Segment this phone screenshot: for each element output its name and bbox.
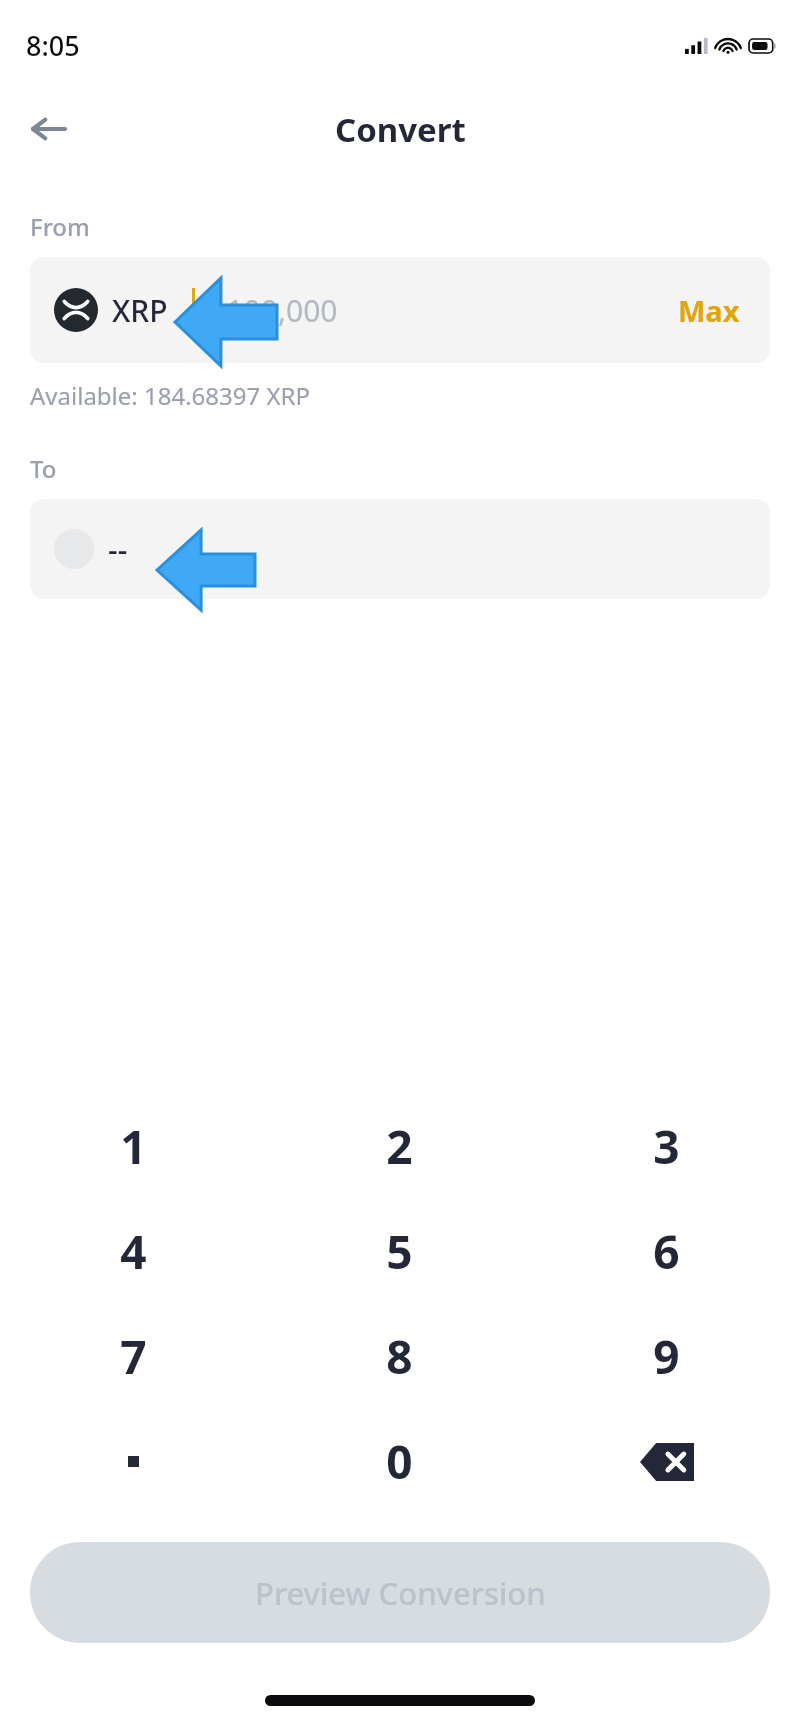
staticText: -- bbox=[108, 529, 128, 570]
staticText: XRP bbox=[112, 290, 168, 331]
button[interactable] bbox=[0, 1409, 266, 1514]
staticText: 8:05 bbox=[26, 27, 80, 64]
button[interactable]: 5 bbox=[266, 1199, 533, 1304]
button[interactable]: XRP bbox=[30, 257, 770, 363]
staticText: To bbox=[30, 452, 57, 485]
button[interactable]: 3 bbox=[533, 1094, 800, 1199]
staticText: Preview Conversion bbox=[255, 1572, 546, 1614]
button[interactable]: 7 bbox=[0, 1304, 266, 1409]
button[interactable]: 0 bbox=[266, 1409, 533, 1514]
staticText: 5 bbox=[386, 1220, 413, 1283]
staticText: 4 bbox=[120, 1220, 147, 1283]
button[interactable]: 2 bbox=[266, 1094, 533, 1199]
button[interactable]: 6 bbox=[533, 1199, 800, 1304]
button[interactable]: 4 bbox=[0, 1199, 266, 1304]
staticText: Max bbox=[678, 291, 740, 330]
staticText: 3 bbox=[653, 1115, 680, 1178]
staticText: 2 bbox=[386, 1115, 413, 1178]
staticText: 1 bbox=[120, 1115, 147, 1178]
staticText: 9 bbox=[653, 1325, 680, 1388]
button[interactable]: Backspace bbox=[533, 1409, 800, 1514]
button[interactable]: Preview Conversion bbox=[30, 1542, 770, 1643]
button[interactable]: Back bbox=[18, 99, 78, 159]
staticText: - 100,000 bbox=[209, 290, 338, 331]
button[interactable]: -- bbox=[30, 499, 770, 599]
button[interactable]: Max bbox=[672, 285, 746, 336]
staticText: From bbox=[30, 210, 90, 243]
staticText: Convert bbox=[335, 107, 466, 152]
staticText: 0 bbox=[386, 1430, 413, 1493]
staticText: 6 bbox=[653, 1220, 680, 1283]
staticText: 8 bbox=[386, 1325, 413, 1388]
button[interactable]: 9 bbox=[533, 1304, 800, 1409]
staticText: Available: 184.68397 XRP bbox=[30, 379, 311, 412]
staticText: 7 bbox=[120, 1325, 147, 1388]
button[interactable]: 8 bbox=[266, 1304, 533, 1409]
button[interactable]: 1 bbox=[0, 1094, 266, 1199]
